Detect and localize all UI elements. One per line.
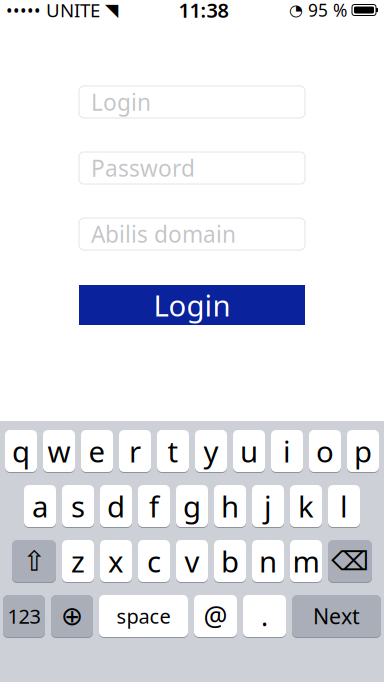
button[interactable]: b: [214, 540, 246, 583]
button[interactable]: x: [100, 540, 132, 583]
button[interactable]: i: [271, 430, 303, 473]
button[interactable]: @: [194, 595, 237, 638]
button[interactable]: Login: [79, 86, 305, 118]
button[interactable]: e: [81, 430, 113, 473]
staticText: UNITE: [41, 0, 105, 22]
button[interactable]: c: [138, 540, 170, 583]
button[interactable]: s: [62, 485, 94, 528]
staticText: y: [203, 431, 218, 470]
staticText: ◥: [105, 0, 118, 20]
staticText: Password: [91, 153, 195, 183]
staticText: •••••: [6, 0, 41, 21]
staticText: ◔: [289, 1, 303, 19]
button[interactable]: q: [5, 430, 37, 473]
staticText: i: [283, 431, 291, 470]
staticText: Login: [153, 285, 230, 324]
button[interactable]: ⇧: [12, 540, 56, 583]
staticText: q: [12, 431, 30, 470]
staticText: ⊕: [61, 601, 83, 631]
button[interactable]: r: [119, 430, 151, 473]
staticText: .: [261, 598, 268, 634]
button[interactable]: v: [176, 540, 208, 583]
button[interactable]: Abilis domain: [79, 218, 305, 250]
staticText: z: [71, 541, 85, 580]
button[interactable]: m: [290, 540, 322, 583]
staticText: 123: [7, 603, 40, 629]
button[interactable]: 123: [3, 595, 45, 638]
staticText: space: [116, 603, 170, 629]
button[interactable]: l: [328, 485, 360, 528]
button[interactable]: ⊕: [51, 595, 93, 638]
button[interactable]: w: [43, 430, 75, 473]
staticText: t: [167, 431, 178, 470]
staticText: d: [107, 486, 125, 525]
staticText: h: [221, 486, 239, 525]
button[interactable]: Login: [79, 285, 305, 325]
button[interactable]: f: [138, 485, 170, 528]
staticText: o: [316, 431, 334, 470]
button[interactable]: z: [62, 540, 94, 583]
button[interactable]: .: [243, 595, 286, 638]
button[interactable]: g: [176, 485, 208, 528]
staticText: k: [298, 486, 314, 525]
staticText: ⌫: [331, 546, 369, 576]
staticText: n: [259, 541, 277, 580]
staticText: g: [183, 486, 201, 525]
staticText: ⇧: [22, 545, 45, 577]
staticText: Abilis domain: [91, 219, 236, 249]
button[interactable]: a: [24, 485, 56, 528]
button[interactable]: p: [347, 430, 379, 473]
staticText: 11:38: [178, 0, 228, 23]
staticText: m: [292, 541, 319, 580]
staticText: p: [354, 431, 372, 470]
staticText: u: [240, 431, 258, 470]
button[interactable]: d: [100, 485, 132, 528]
button[interactable]: j: [252, 485, 284, 528]
button[interactable]: ⌫: [328, 540, 372, 583]
staticText: w: [47, 431, 70, 470]
staticText: a: [32, 486, 48, 525]
button[interactable]: Next: [292, 595, 381, 638]
button[interactable]: k: [290, 485, 322, 528]
button[interactable]: u: [233, 430, 265, 473]
staticText: r: [129, 431, 141, 470]
staticText: x: [108, 541, 124, 580]
staticText: f: [149, 486, 159, 525]
staticText: Login: [91, 87, 151, 117]
button[interactable]: n: [252, 540, 284, 583]
staticText: b: [221, 541, 239, 580]
staticText: 95 %: [303, 0, 352, 21]
staticText: l: [340, 486, 348, 525]
button[interactable]: o: [309, 430, 341, 473]
staticText: v: [184, 541, 199, 580]
button[interactable]: y: [195, 430, 227, 473]
button[interactable]: space: [99, 595, 188, 638]
staticText: e: [88, 431, 105, 470]
button[interactable]: t: [157, 430, 189, 473]
button[interactable]: Password: [79, 152, 305, 184]
button[interactable]: h: [214, 485, 246, 528]
staticText: c: [147, 541, 161, 580]
staticText: j: [264, 486, 272, 525]
staticText: @: [203, 598, 227, 634]
staticText: s: [71, 486, 85, 525]
staticText: Next: [313, 602, 360, 630]
